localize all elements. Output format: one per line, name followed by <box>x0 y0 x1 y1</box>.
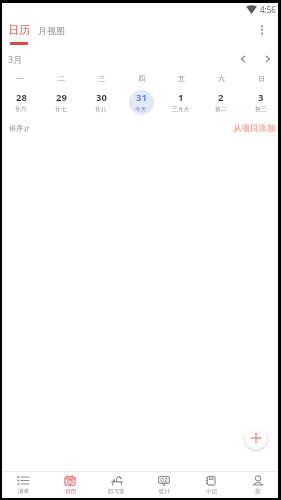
staticText: 3 <box>258 91 264 104</box>
staticText: 日历 <box>65 488 76 495</box>
button[interactable]: 统计 <box>140 472 187 498</box>
button[interactable]: 30 <box>81 86 121 116</box>
staticText: 4:56 <box>260 4 276 15</box>
staticText: 五 <box>178 74 185 83</box>
staticText: 29 <box>56 91 67 104</box>
staticText: 30 <box>96 91 107 104</box>
staticText: 今天 <box>135 106 147 113</box>
staticText: 初三 <box>255 106 267 113</box>
button[interactable]: Add task <box>243 425 269 451</box>
button[interactable]: 清单 <box>0 472 46 498</box>
staticText: 廿八 <box>95 106 107 113</box>
staticText: 三 <box>98 74 105 83</box>
button[interactable]: 1 <box>161 86 201 116</box>
button[interactable]: 排序 <box>9 124 29 133</box>
staticText: 三月大 <box>172 106 190 113</box>
staticText: 六 <box>218 74 225 83</box>
staticText: 3月 <box>8 53 23 65</box>
button[interactable]: Next month <box>259 50 277 68</box>
staticText: 四 <box>138 74 145 83</box>
button[interactable]: 小记 <box>187 472 234 498</box>
staticText: 我 <box>255 488 261 495</box>
staticText: 28 <box>16 91 27 104</box>
button[interactable]: 2 <box>201 86 241 116</box>
staticText: 二 <box>58 74 65 83</box>
staticText: 日历 <box>8 23 30 37</box>
staticText: 一 <box>17 74 24 83</box>
button[interactable]: 我 <box>234 472 281 498</box>
staticText: 月视图 <box>38 25 65 36</box>
staticText: 排序 <box>9 124 23 133</box>
button[interactable]: 日历 <box>8 23 30 45</box>
staticText: 廿六 <box>15 106 27 113</box>
staticText: 小记 <box>206 488 217 495</box>
staticText: 统计 <box>159 488 170 495</box>
button[interactable]: 自习室 <box>93 472 140 498</box>
staticText: 日 <box>258 74 265 83</box>
staticText: 廿七 <box>55 106 67 113</box>
button[interactable]: Previous month <box>234 50 252 68</box>
staticText: 自习室 <box>108 488 125 495</box>
staticText: 31 <box>136 91 147 104</box>
staticText: 2 <box>218 91 224 104</box>
staticText: 初二 <box>215 106 227 113</box>
button[interactable]: 31 <box>121 86 161 116</box>
button[interactable]: 月视图 <box>38 23 65 36</box>
staticText: 1 <box>178 91 184 104</box>
button[interactable]: 29 <box>41 86 81 116</box>
staticText: 清单 <box>18 488 29 495</box>
button[interactable]: More options <box>253 21 271 39</box>
button[interactable]: 3 <box>241 86 281 116</box>
button[interactable]: 28 <box>0 86 41 116</box>
button[interactable]: 从项目添加 <box>233 123 276 134</box>
button[interactable]: 日历 <box>46 472 93 498</box>
